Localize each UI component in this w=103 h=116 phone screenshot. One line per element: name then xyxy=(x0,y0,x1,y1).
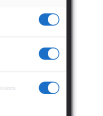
button[interactable]: Switch xyxy=(39,13,59,26)
button[interactable]: Switch xyxy=(39,47,59,60)
staticText: ssions xyxy=(0,84,16,91)
button[interactable]: ssions xyxy=(39,82,59,94)
